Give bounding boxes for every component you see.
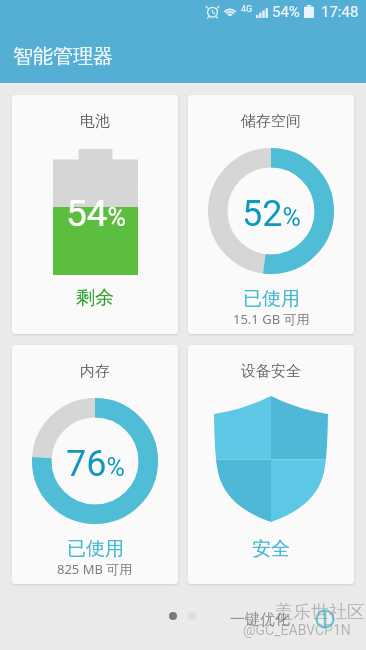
staticText: 15.1 GB 可用 — [233, 310, 310, 328]
staticText: 52% — [242, 193, 301, 235]
staticText: 智能管理器 — [13, 44, 113, 69]
staticText: @GC_EABVCP1N — [243, 622, 351, 638]
staticText: 电池 — [80, 112, 110, 131]
staticText: 内存 — [80, 362, 110, 381]
staticText: 已使用 — [67, 537, 124, 561]
staticText: 825 MB 可用 — [57, 560, 133, 578]
button[interactable]: 一键优化 — [230, 610, 290, 629]
button[interactable]: Page indicator — [164, 608, 200, 625]
button[interactable]: 设备安全 — [188, 345, 354, 584]
staticText: 54% — [66, 192, 126, 235]
staticText: 已使用 — [243, 287, 300, 311]
staticText: 储存空间 — [241, 112, 301, 131]
staticText: 54% — [272, 3, 300, 21]
staticText: 安全 — [252, 537, 290, 561]
staticText: 设备安全 — [241, 362, 301, 381]
staticText: 一键优化 — [230, 610, 290, 629]
staticText: 4G — [241, 4, 253, 15]
button[interactable]: 内存 — [12, 345, 178, 584]
button[interactable]: 电池 — [12, 95, 178, 334]
staticText: 剩余 — [76, 286, 114, 310]
staticText: 17:48 — [321, 3, 359, 21]
staticText: 盖乐世社区 — [275, 601, 365, 624]
button[interactable]: 储存空间 — [188, 95, 354, 334]
staticText: 76% — [66, 443, 125, 485]
